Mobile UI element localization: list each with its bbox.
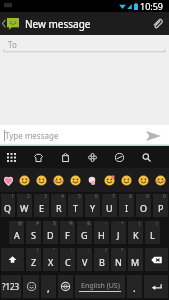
button[interactable]: G (77, 221, 92, 244)
button[interactable]: B (94, 248, 109, 271)
staticText: ( (139, 220, 141, 227)
button[interactable]: I (119, 194, 134, 217)
staticText: 1 (11, 193, 14, 200)
button[interactable]: Emoji 8 (118, 168, 135, 192)
staticText: 5 (78, 193, 81, 200)
staticText: New message (25, 17, 91, 31)
staticText: 8 (129, 193, 132, 200)
button[interactable]: Z (26, 248, 41, 271)
staticText: % (69, 220, 74, 227)
button[interactable]: U (102, 194, 117, 217)
staticText: L (150, 229, 155, 241)
button[interactable]: Emoji 3 (33, 168, 50, 192)
button[interactable]: M (128, 248, 143, 271)
staticText: E (39, 202, 45, 214)
button[interactable]: Emoji 2 (16, 168, 33, 192)
staticText: 7 (112, 193, 115, 200)
staticText: P (158, 202, 164, 214)
staticText: & (87, 220, 91, 227)
staticText: W (20, 202, 29, 214)
staticText: , (47, 281, 50, 295)
staticText: C (65, 256, 71, 268)
staticText: ?123 (2, 281, 20, 292)
button[interactable]: Navigate up (0, 12, 21, 35)
button[interactable]: Emoji (23, 275, 39, 298)
staticText: O (140, 202, 148, 214)
staticText: 2 (27, 193, 30, 200)
staticText: V (82, 256, 88, 268)
button[interactable]: J (111, 221, 126, 244)
button[interactable]: Change language (58, 275, 73, 298)
staticText: D (47, 229, 54, 241)
staticText: B (99, 256, 105, 268)
button[interactable]: W (17, 194, 32, 217)
staticText: - (105, 220, 107, 227)
staticText: H (98, 229, 105, 241)
button[interactable]: Q (1, 194, 15, 217)
button[interactable]: Nature (81, 146, 108, 168)
button[interactable]: Backspace (145, 248, 168, 271)
staticText: Q (4, 202, 12, 214)
button[interactable]: L (145, 221, 160, 244)
button[interactable]: Emoji 9 (135, 168, 152, 192)
staticText: 10:59 (140, 0, 164, 12)
button[interactable]: S (26, 221, 41, 244)
button[interactable]: Shift (1, 248, 24, 271)
button[interactable]: K (128, 221, 143, 244)
button[interactable]: Attach (146, 12, 169, 35)
button[interactable]: ?123 (1, 275, 21, 298)
staticText: + (121, 220, 124, 227)
button[interactable]: P (153, 194, 168, 217)
staticText: F (65, 229, 70, 241)
staticText: 4 (61, 193, 64, 200)
button[interactable]: F (60, 221, 75, 244)
button[interactable]: People (27, 146, 54, 168)
button[interactable]: Objects (54, 146, 81, 168)
button[interactable]: Search (135, 146, 162, 168)
button[interactable]: R (51, 194, 66, 217)
button[interactable]: Emoji 4 (50, 168, 67, 192)
button[interactable]: O (136, 194, 151, 217)
button[interactable]: A (9, 221, 24, 244)
staticText: 0 (163, 193, 166, 200)
staticText: R (56, 202, 62, 214)
button[interactable]: . (127, 275, 142, 298)
staticText: N (115, 256, 122, 268)
staticText: A (14, 229, 20, 241)
staticText: I (125, 202, 129, 214)
button[interactable]: Space (75, 275, 125, 298)
staticText: @ (18, 220, 23, 227)
staticText: Z (31, 256, 37, 268)
button[interactable]: H (94, 221, 109, 244)
staticText: ? (121, 247, 124, 254)
button[interactable]: Recent (0, 146, 27, 168)
button[interactable]: Send (137, 125, 169, 146)
staticText: U (106, 202, 113, 214)
button[interactable]: C (60, 248, 75, 271)
button[interactable]: Emoji 10 (152, 168, 169, 192)
button[interactable]: Emoji 1 (0, 168, 16, 192)
staticText: ) (156, 220, 158, 227)
staticText: 3 (44, 193, 47, 200)
staticText: Y (90, 202, 96, 214)
button[interactable]: T (68, 194, 83, 217)
button[interactable]: To (0, 35, 169, 53)
staticText: $ (53, 220, 56, 227)
button[interactable]: Enter (144, 275, 168, 298)
button[interactable]: Y (85, 194, 100, 217)
button[interactable]: Emoji 5 (67, 168, 84, 192)
button[interactable]: D (43, 221, 58, 244)
button[interactable]: Emoji 6 (84, 168, 101, 192)
button[interactable]: X (43, 248, 58, 271)
button[interactable]: Symbols (108, 146, 135, 168)
button[interactable]: Emoji 7 (101, 168, 118, 192)
staticText: # (36, 220, 40, 227)
staticText: English (US) (81, 281, 120, 291)
button[interactable]: , (41, 275, 56, 298)
button[interactable]: E (34, 194, 49, 217)
staticText: : (71, 247, 73, 254)
button[interactable]: Type message (0, 125, 137, 146)
button[interactable]: N (111, 248, 126, 271)
button[interactable]: V (77, 248, 92, 271)
staticText: 6 (95, 193, 98, 200)
